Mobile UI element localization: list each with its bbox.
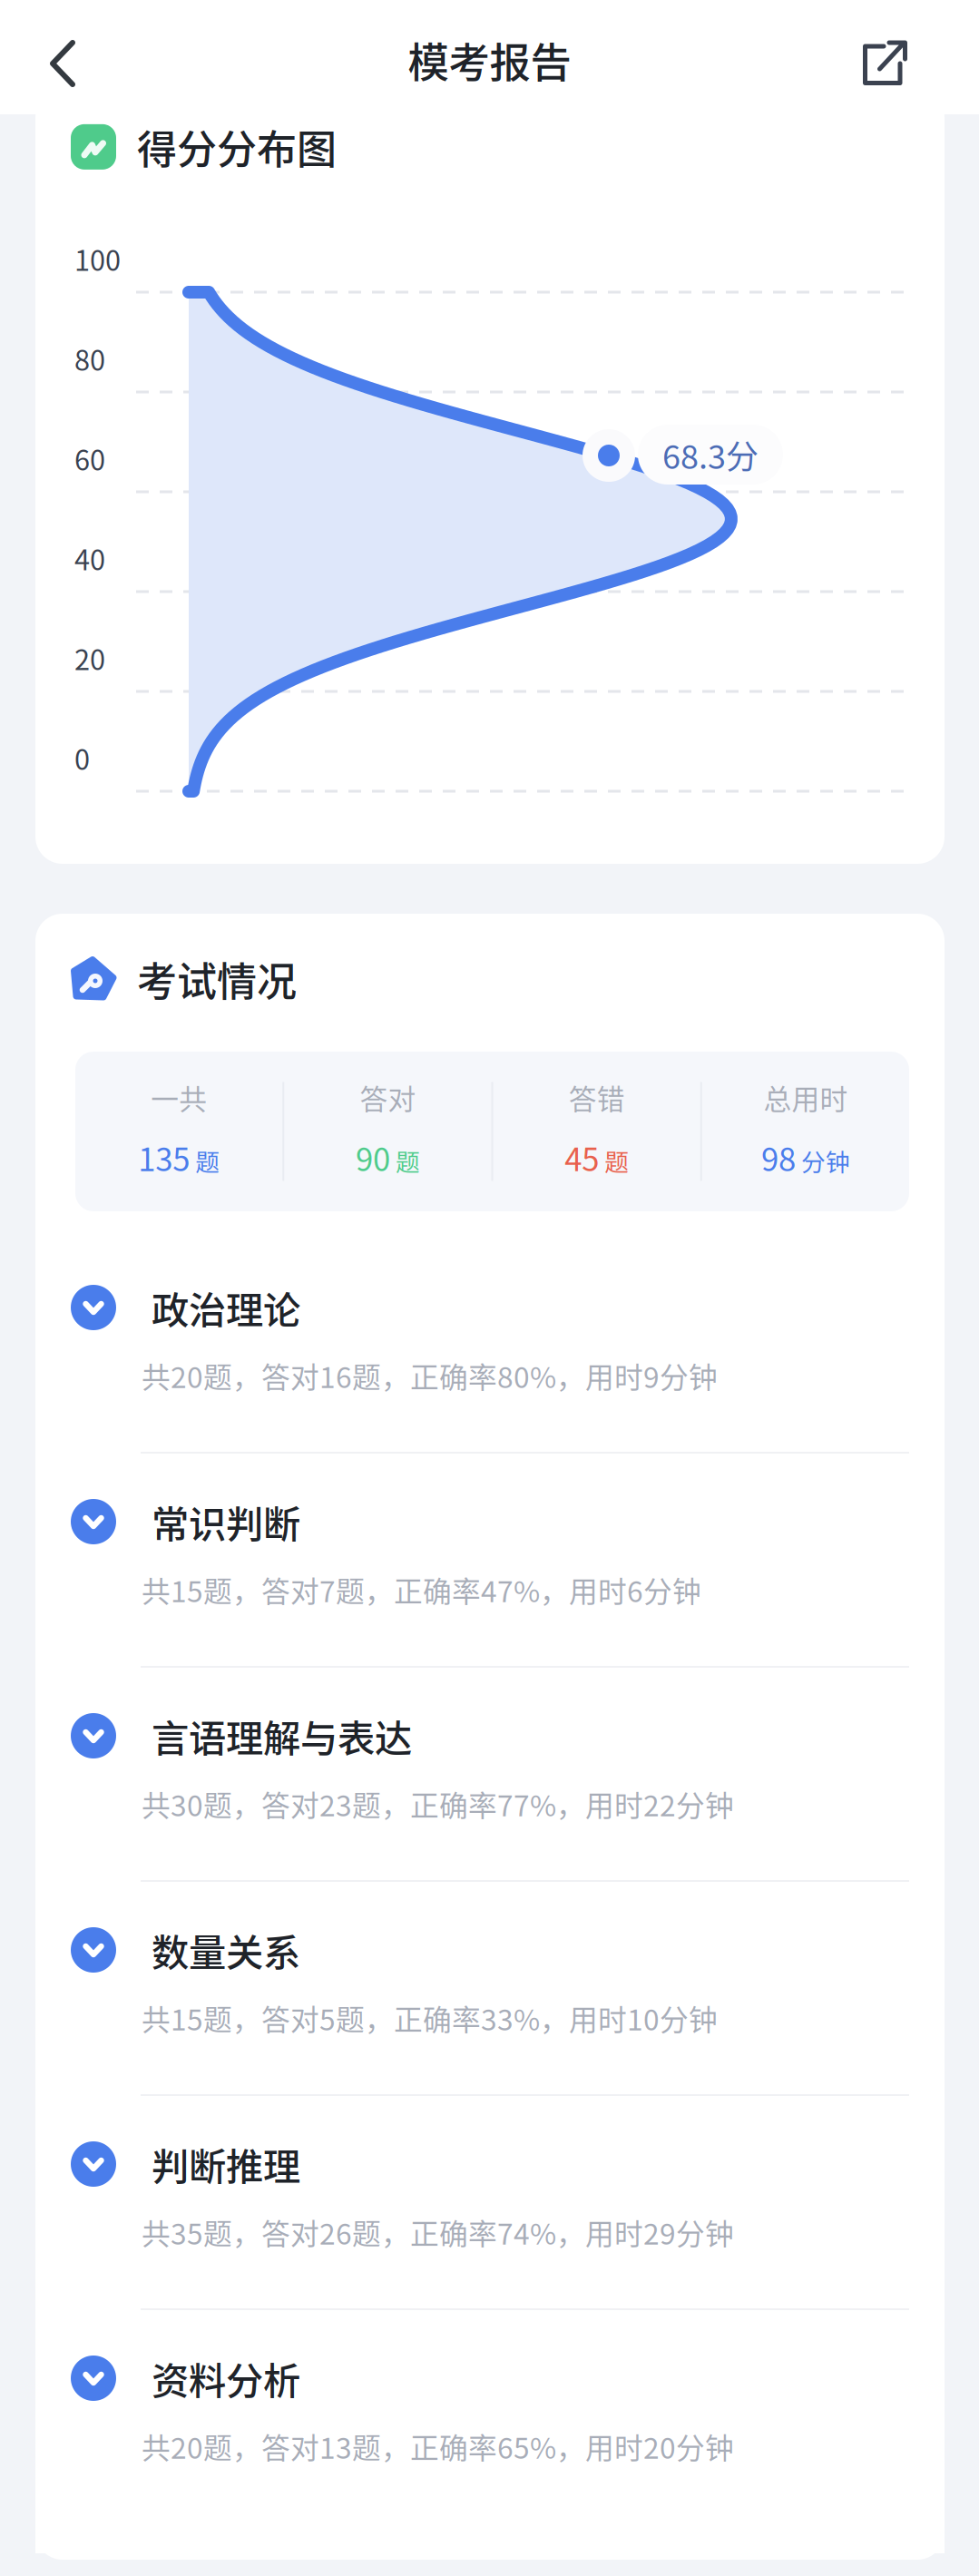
staticText: 共15题，答对7题，正确率47%，用时6分钟 (142, 1569, 701, 1610)
button[interactable]: Back (13, 6, 113, 121)
staticText: 68.3分 (662, 431, 759, 478)
button[interactable]: 常识判断 (35, 1483, 945, 1697)
staticText: 政治理论 (152, 1280, 300, 1335)
staticText: 题 (195, 1143, 220, 1178)
staticText: 答错 (569, 1077, 625, 1118)
staticText: 100 (74, 238, 121, 279)
staticText: 答对 (360, 1077, 416, 1118)
staticText: 资料分析 (152, 2351, 300, 2405)
staticText: 90 (356, 1135, 390, 1180)
button[interactable]: 政治理论 (35, 1268, 945, 1483)
staticText: 20 (74, 638, 105, 678)
staticText: 0 (74, 738, 90, 778)
staticText: 考试情况 (137, 950, 297, 1008)
button[interactable]: 言语理解与表达 (35, 1697, 945, 1911)
staticText: 数量关系 (152, 1923, 300, 1977)
staticText: 80 (74, 338, 105, 379)
button[interactable]: 资料分析 (35, 2339, 945, 2553)
staticText: 共20题，答对16题，正确率80%，用时9分钟 (142, 1355, 718, 1396)
staticText: 共15题，答对5题，正确率33%，用时10分钟 (142, 1997, 718, 2039)
staticText: 共20题，答对13题，正确率65%，用时20分钟 (142, 2425, 734, 2467)
staticText: 题 (604, 1143, 629, 1178)
staticText: 一共 (151, 1077, 207, 1118)
button[interactable]: 数量关系 (35, 1911, 945, 2125)
staticText: 60 (74, 438, 105, 478)
staticText: 共35题，答对26题，正确率74%，用时29分钟 (142, 2211, 734, 2253)
staticText: 题 (396, 1143, 420, 1178)
staticText: 言语理解与表达 (152, 1709, 412, 1763)
staticText: 分钟 (801, 1143, 850, 1178)
staticText: 98 (761, 1135, 796, 1180)
staticText: 模考报告 (408, 30, 571, 90)
staticText: 40 (74, 538, 105, 578)
staticText: 判断推理 (152, 2137, 300, 2191)
staticText: 共30题，答对23题，正确率77%，用时22分钟 (142, 1783, 734, 1825)
button[interactable]: Share (836, 5, 935, 120)
button[interactable]: 判断推理 (35, 2125, 945, 2339)
staticText: 45 (564, 1135, 599, 1180)
staticText: 总用时 (763, 1077, 848, 1118)
staticText: 135 (138, 1135, 190, 1180)
staticText: 常识判断 (152, 1495, 300, 1549)
staticText: 得分分布图 (137, 118, 337, 176)
